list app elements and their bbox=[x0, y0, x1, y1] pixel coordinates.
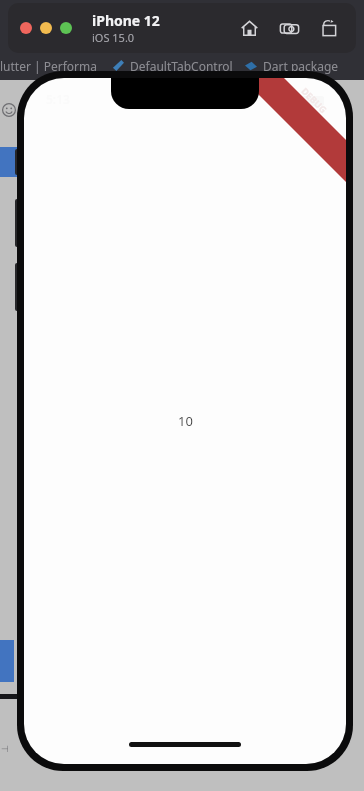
button[interactable]: Zoom bbox=[60, 22, 72, 34]
staticText: 10 bbox=[178, 412, 193, 430]
button[interactable]: Screenshot bbox=[274, 13, 304, 43]
button[interactable]: Close bbox=[20, 22, 32, 34]
staticText: iOS 15.0 bbox=[92, 30, 135, 45]
staticText: Dart package bbox=[263, 58, 339, 74]
staticText: iPhone 12 bbox=[92, 11, 160, 30]
staticText: DEBUG bbox=[299, 85, 330, 115]
staticText: DefaultTabControl bbox=[130, 58, 233, 74]
button[interactable]: Screen recording bbox=[314, 13, 344, 43]
staticText: lutter | Performa bbox=[0, 58, 98, 74]
staticText: ⊣ bbox=[1, 744, 9, 754]
button[interactable]: Home bbox=[234, 13, 264, 43]
button[interactable]: Minimise bbox=[40, 22, 52, 34]
